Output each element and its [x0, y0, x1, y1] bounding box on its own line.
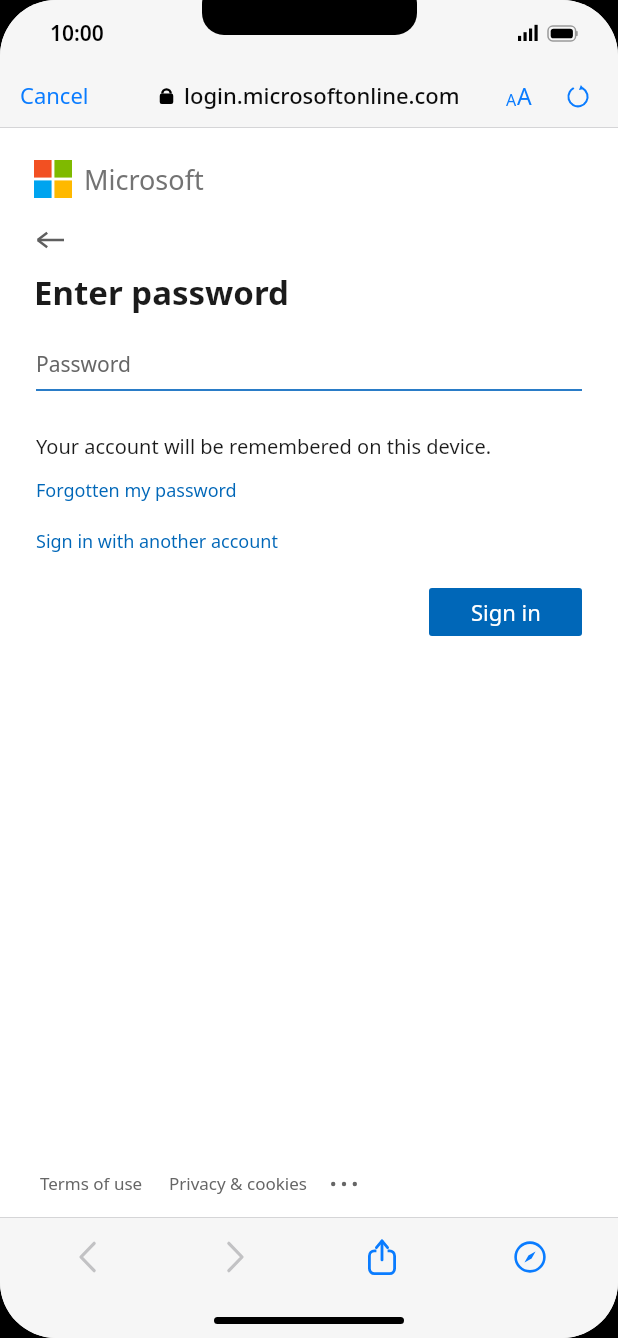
staticText: Microsoft	[84, 161, 204, 198]
button[interactable]: Tabs	[456, 1240, 604, 1274]
staticText: Password	[36, 350, 131, 379]
staticText: A	[506, 89, 517, 111]
button[interactable]: Forgotten my password	[36, 478, 237, 503]
button[interactable]: Back	[14, 1239, 161, 1275]
button[interactable]: Privacy & cookies	[169, 1168, 307, 1199]
button[interactable]: Terms of use	[40, 1168, 143, 1199]
staticText: Forgotten my password	[36, 478, 237, 503]
staticText: Privacy & cookies	[169, 1172, 307, 1195]
staticText: Terms of use	[40, 1172, 143, 1195]
staticText: Sign in with another account	[36, 529, 278, 554]
button[interactable]: Back	[28, 222, 72, 258]
staticText: A	[517, 80, 532, 111]
staticText: 10:00	[50, 19, 104, 48]
button[interactable]: Reload	[560, 78, 596, 114]
button[interactable]: Password	[36, 343, 582, 391]
button[interactable]: More	[329, 1176, 359, 1192]
staticText: Cancel	[20, 80, 89, 110]
staticText: Enter password	[34, 270, 289, 315]
staticText: Your account will be remembered on this …	[36, 433, 492, 460]
button[interactable]: Sign in	[429, 588, 582, 636]
staticText: Sign in	[471, 597, 541, 627]
button[interactable]: Share	[308, 1239, 456, 1275]
button[interactable]: Sign in with another account	[36, 529, 278, 554]
button[interactable]: Forward	[161, 1239, 308, 1275]
staticText: login.microsoftonline.com	[184, 80, 460, 110]
button[interactable]: Text size	[500, 72, 538, 119]
button[interactable]: Cancel	[0, 70, 109, 120]
